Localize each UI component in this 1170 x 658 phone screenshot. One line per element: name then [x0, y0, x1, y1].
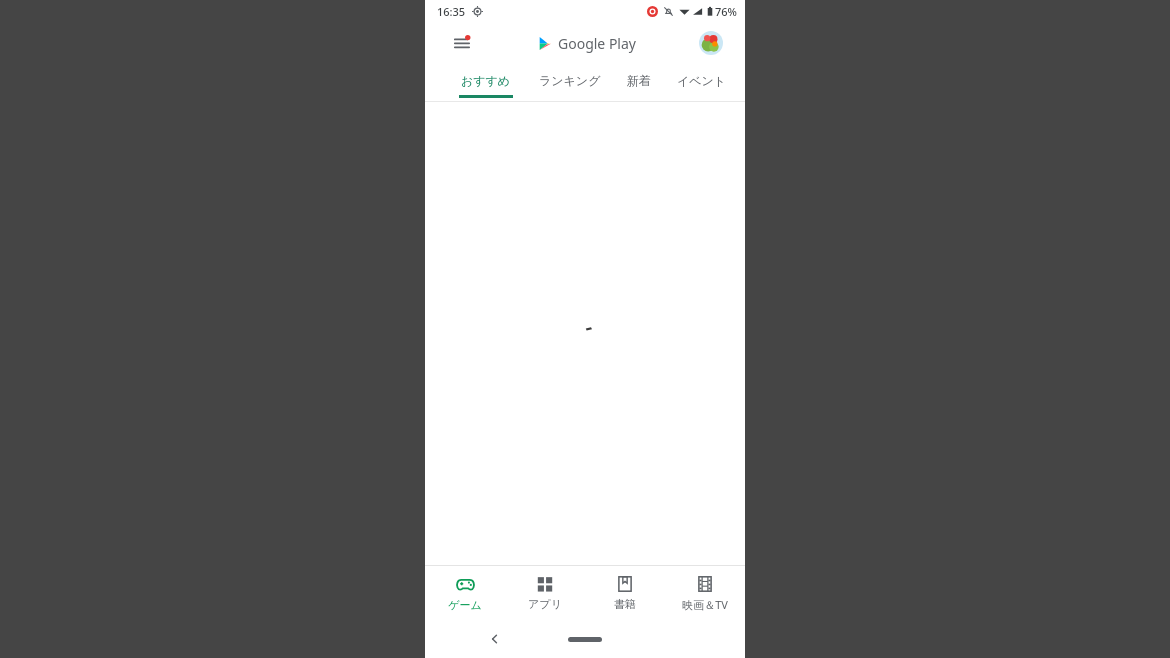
button[interactable]: おすすめ [459, 64, 513, 102]
staticText: おすすめ [461, 73, 511, 88]
staticText: ランキング [539, 73, 601, 88]
staticText: Google Play [558, 34, 636, 53]
button[interactable]: 新着 [627, 64, 651, 102]
button[interactable]: Account [699, 31, 723, 55]
button[interactable]: 映画＆TV [665, 566, 745, 620]
staticText: 16:35 [437, 4, 466, 19]
staticText: 新着 [627, 73, 651, 88]
staticText: 76% [715, 4, 737, 19]
staticText: 映画＆TV [682, 597, 728, 612]
button[interactable]: 書籍 [585, 566, 665, 620]
staticText: ゲーム [448, 598, 482, 612]
button[interactable]: イベント [677, 64, 727, 102]
button[interactable]: Menu [439, 25, 731, 61]
button[interactable]: Menu [449, 30, 475, 56]
button[interactable]: Home [568, 637, 602, 642]
staticText: イベント [677, 73, 727, 88]
staticText: アプリ [528, 597, 562, 611]
button[interactable]: ゲーム [425, 566, 505, 620]
button[interactable]: アプリ [505, 566, 585, 620]
button[interactable]: ランキング [539, 64, 601, 102]
button[interactable]: Back [483, 627, 507, 651]
staticText: 書籍 [614, 597, 636, 611]
